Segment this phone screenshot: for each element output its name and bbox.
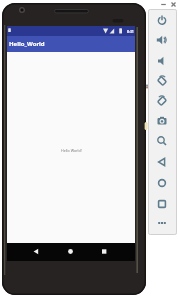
button[interactable] [155, 13, 169, 27]
button[interactable] [159, 0, 168, 9]
button[interactable] [155, 114, 169, 128]
button[interactable] [155, 33, 169, 47]
button[interactable] [7, 243, 49, 261]
button[interactable] [155, 216, 169, 230]
button[interactable] [169, 0, 178, 9]
button[interactable] [155, 155, 169, 169]
staticText: Hello_World [9, 40, 45, 48]
button[interactable] [155, 74, 169, 88]
button[interactable] [155, 54, 169, 68]
button[interactable] [155, 197, 169, 211]
button[interactable] [155, 176, 169, 190]
button[interactable] [155, 134, 169, 148]
button[interactable] [155, 94, 169, 108]
button[interactable] [49, 243, 92, 261]
staticText: Hello World! [61, 148, 82, 153]
button[interactable] [92, 243, 135, 261]
staticText: 8:31 [127, 29, 134, 34]
